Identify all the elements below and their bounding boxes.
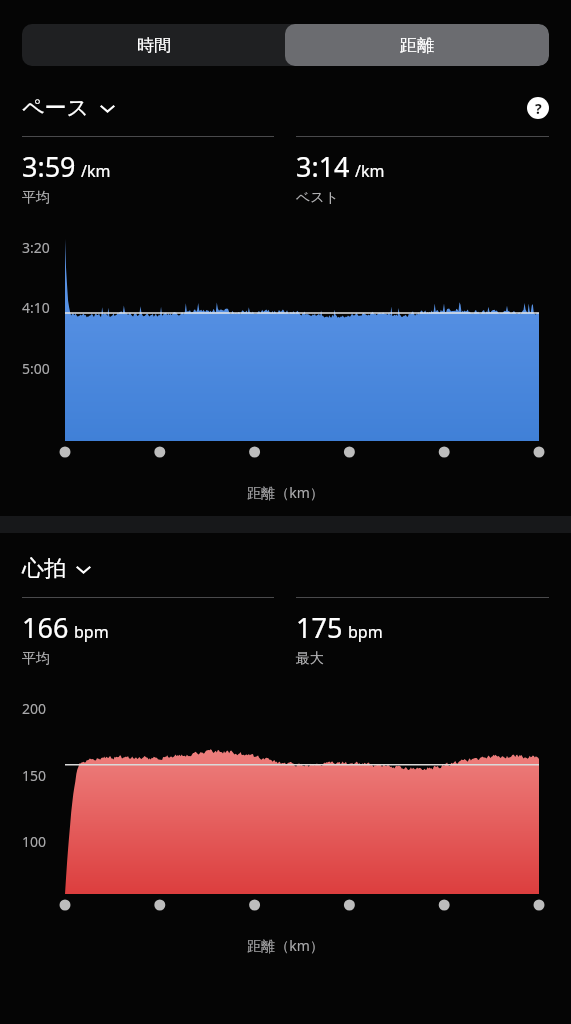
staticText: 3:20	[22, 238, 50, 257]
staticText: ベスト	[296, 189, 339, 207]
staticText: 平均	[22, 650, 50, 668]
staticText: 距離（km）	[0, 483, 571, 502]
staticText: 3:59	[22, 148, 76, 185]
button[interactable]: 心拍	[22, 555, 92, 583]
staticText: 平均	[22, 189, 50, 207]
staticText: 心拍	[22, 555, 66, 583]
staticText: ?	[535, 99, 542, 118]
staticText: 166	[22, 609, 69, 646]
staticText: 100	[22, 832, 47, 851]
staticText: 5:00	[22, 359, 50, 378]
staticText: 最大	[296, 650, 324, 668]
staticText: ペース	[22, 94, 90, 122]
staticText: 150	[22, 766, 47, 785]
staticText: /km	[355, 160, 385, 182]
staticText: 時間	[137, 35, 171, 56]
staticText: 3:14	[296, 148, 350, 185]
staticText: 175	[296, 609, 343, 646]
staticText: 200	[22, 699, 47, 718]
staticText: bpm	[348, 621, 383, 643]
button[interactable]: ペース	[22, 94, 116, 122]
staticText: /km	[81, 160, 111, 182]
staticText: 4:10	[22, 298, 50, 317]
staticText: 距離（km）	[0, 936, 571, 955]
button[interactable]: Help	[527, 97, 549, 119]
button[interactable]: 時間	[22, 24, 285, 66]
button[interactable]: 距離	[285, 24, 549, 66]
staticText: bpm	[74, 621, 109, 643]
staticText: 距離	[400, 35, 434, 56]
